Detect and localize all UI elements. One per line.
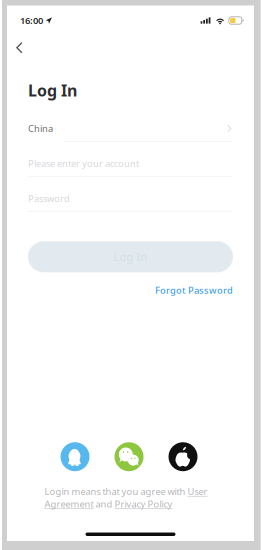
button[interactable]: China xyxy=(28,116,233,151)
button[interactable]: Sign in with QQ xyxy=(60,442,89,471)
button[interactable]: Sign in with WeChat xyxy=(114,442,143,471)
button[interactable]: Forgot Password xyxy=(155,284,233,296)
staticText: Please enter your account xyxy=(28,157,139,170)
staticText: 16:00 xyxy=(20,14,43,27)
staticText: China xyxy=(28,122,53,135)
staticText: Login means that you agree with User Agr… xyxy=(44,485,207,510)
staticText: Password xyxy=(28,192,70,205)
staticText: Forgot Password xyxy=(155,284,233,296)
button[interactable]: Sign in with Apple xyxy=(168,442,197,471)
staticText: Log In xyxy=(28,80,77,101)
staticText: Log In xyxy=(113,250,147,264)
button[interactable]: Back xyxy=(7,39,38,57)
button[interactable]: Log In xyxy=(28,241,233,272)
